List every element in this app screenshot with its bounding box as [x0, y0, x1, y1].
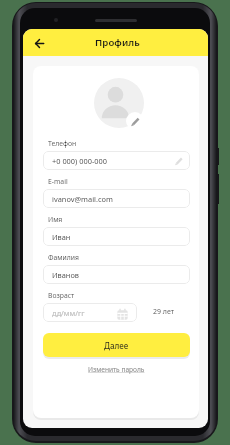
staticText: Иван	[52, 232, 71, 242]
button[interactable]: Change photo	[94, 78, 144, 128]
staticText: +0 000) 000-000	[52, 156, 107, 166]
staticText: E-mail	[48, 177, 68, 186]
staticText: Возраст	[48, 291, 75, 300]
staticText: дд/мм/гг	[52, 308, 85, 318]
staticText: ivanov@mail.com	[52, 194, 113, 204]
staticText: Фамилия	[48, 253, 79, 262]
staticText: Профиль	[95, 36, 140, 49]
staticText: Иванов	[52, 270, 79, 280]
button[interactable]: дд/мм/гг	[43, 303, 137, 322]
button[interactable]: Изменить пароль	[43, 363, 190, 375]
button[interactable]: Иван	[43, 227, 190, 246]
button[interactable]: Далее	[43, 333, 190, 357]
button[interactable]: ivanov@mail.com	[43, 189, 190, 208]
staticText: 29 лет	[153, 307, 174, 317]
staticText: Телефон	[48, 139, 77, 148]
staticText: Имя	[48, 215, 63, 224]
button[interactable]: +0 000) 000-000	[43, 151, 190, 170]
button[interactable]: Back	[30, 34, 48, 52]
staticText: Изменить пароль	[88, 365, 145, 374]
button[interactable]: Иванов	[43, 265, 190, 284]
staticText: Далее	[104, 340, 129, 351]
button[interactable]: Edit photo	[126, 112, 144, 130]
